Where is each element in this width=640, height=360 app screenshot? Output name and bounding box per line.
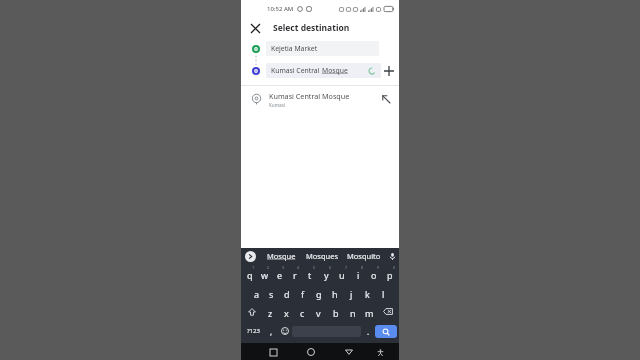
staticText: . [367,326,370,337]
button[interactable]: f [295,283,311,302]
staticText: d [284,288,290,300]
button[interactable]: 7 [334,264,350,283]
button[interactable]: d [279,283,295,302]
button[interactable]: Search [375,325,397,338]
button[interactable]: k [359,283,375,302]
staticText: q [247,269,253,281]
staticText: Kumasi Central Mosque [269,91,350,101]
button[interactable]: j [343,283,359,302]
button[interactable]: Kumasi Central [266,63,381,78]
button[interactable]: Close [246,19,264,37]
staticText: Mosque [267,251,296,261]
button[interactable]: s [264,283,279,302]
staticText: i [357,269,360,281]
staticText: m [365,307,374,319]
staticText: 2 [267,265,270,270]
button[interactable]: g [311,283,327,302]
button[interactable]: 0 [382,264,398,283]
button[interactable]: z [262,302,278,321]
staticText: z [268,307,273,319]
staticText: c [300,307,305,319]
staticText: n [350,307,356,319]
button[interactable]: Mosquito [343,248,385,264]
staticText: j [350,288,353,300]
button[interactable]: Home [303,344,319,360]
staticText: Kumasi [269,102,285,108]
button[interactable]: Voice input [385,249,399,263]
button[interactable]: Mosques [301,248,343,264]
staticText: 10:52 AM [267,5,294,13]
staticText: Mosques [306,251,339,261]
button[interactable]: 1 [242,264,257,283]
button[interactable]: 3 [272,264,287,283]
staticText: Mosque [322,66,348,75]
staticText: h [332,288,338,300]
staticText: k [365,288,370,300]
staticText: b [333,307,339,319]
button[interactable]: x [278,302,294,321]
button[interactable]: 6 [318,264,334,283]
staticText: v [316,307,321,319]
button[interactable]: b [327,302,344,321]
staticText: x [284,307,289,319]
staticText: t [308,269,312,281]
button[interactable]: ?123 [242,321,264,341]
staticText: 4 [297,265,300,270]
staticText: , [270,326,273,337]
button[interactable]: Shift [242,302,262,321]
button[interactable]: Back [341,344,357,360]
staticText: o [371,269,377,281]
button[interactable]: Accessibility [372,344,388,360]
staticText: ?123 [247,327,260,335]
staticText: 1 [252,265,255,270]
staticText: g [316,288,322,300]
staticText: w [261,269,269,281]
staticText: f [301,288,305,300]
button[interactable]: Emoji [278,321,292,341]
button[interactable]: Expand suggestions [245,251,256,262]
button[interactable]: Kejetia Market [266,41,379,56]
staticText: y [324,269,329,281]
button[interactable]: Recents [265,344,281,360]
staticText: a [254,288,260,300]
button[interactable]: 4 [287,264,302,283]
staticText: r [293,269,297,281]
button[interactable]: v [310,302,327,321]
button[interactable]: 9 [366,264,382,283]
button[interactable]: Add stop [381,63,397,78]
staticText: 0 [393,265,396,270]
button[interactable]: a [249,283,264,302]
button[interactable]: m [361,302,378,321]
staticText: 8 [361,265,364,270]
staticText: 3 [282,265,285,270]
staticText: Kumasi Central [271,66,322,75]
staticText: s [269,288,274,300]
button[interactable]: . [361,321,375,341]
button[interactable]: 2 [257,264,272,283]
button[interactable]: 8 [350,264,366,283]
staticText: Mosquito [347,251,381,261]
button[interactable]: h [327,283,343,302]
button[interactable]: 5 [302,264,318,283]
button[interactable]: Use suggestion [378,91,394,107]
button[interactable]: l [375,283,391,302]
staticText: 7 [345,265,348,270]
button[interactable]: Backspace [378,302,398,321]
staticText: l [382,288,385,300]
staticText: p [387,269,393,281]
staticText: 6 [329,265,332,270]
staticText: Kejetia Market [271,44,318,53]
button[interactable]: Kumasi Central Mosque [241,86,399,112]
staticText: Select destination [273,22,350,34]
button[interactable]: Mosque [261,248,301,264]
staticText: 9 [377,265,380,270]
button[interactable]: , [264,321,278,341]
staticText: 5 [313,265,316,270]
button[interactable]: c [294,302,310,321]
staticText: e [277,269,283,281]
staticText: u [339,269,345,281]
button[interactable]: n [344,302,361,321]
